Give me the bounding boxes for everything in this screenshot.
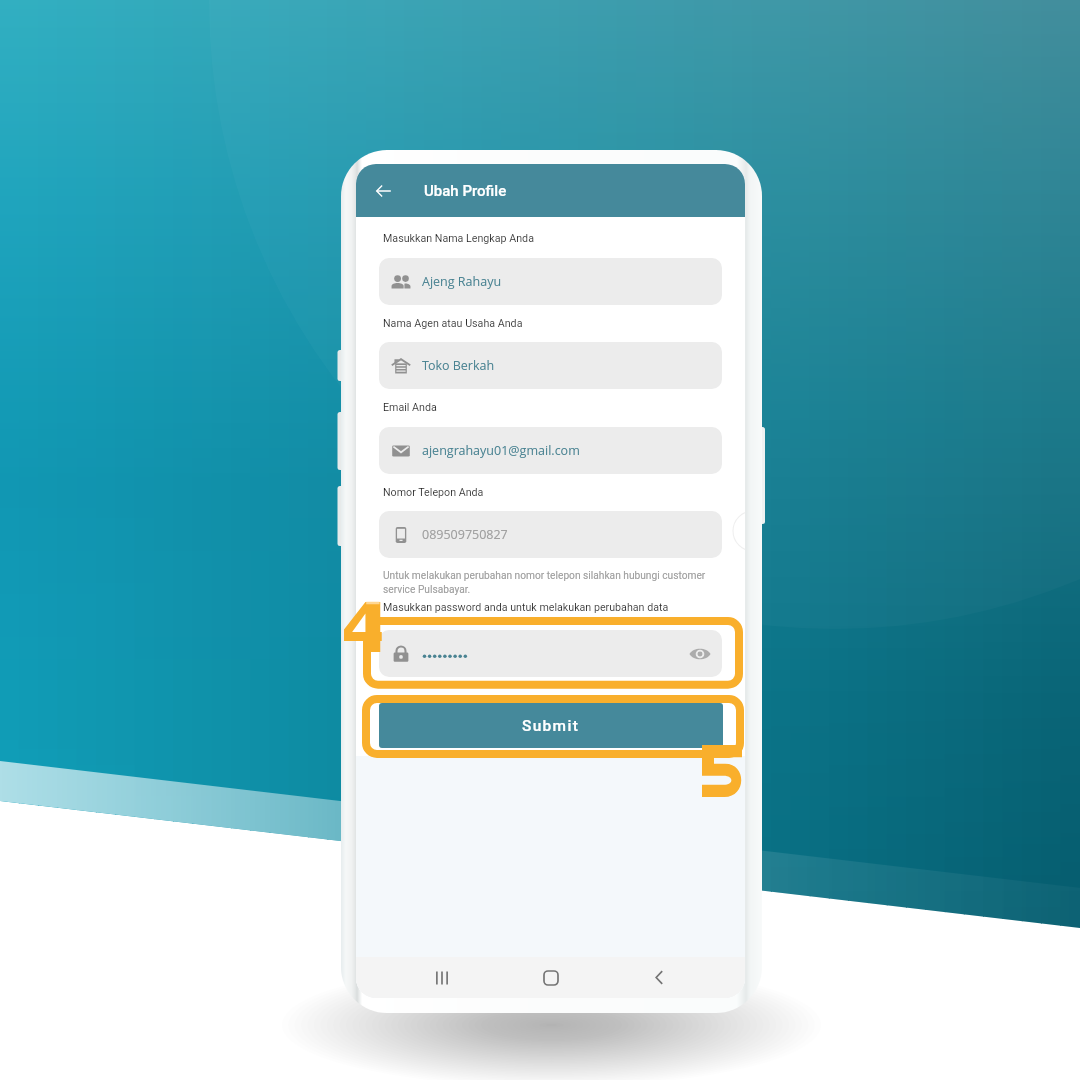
staticText: Nama Agen atau Usaha Anda <box>383 317 523 330</box>
button[interactable]: Ajeng Rahayu <box>379 258 722 305</box>
button[interactable]: ajengrahayu01@gmail.com <box>379 427 722 474</box>
staticText: Ubah Profile <box>424 182 507 200</box>
staticText: Masukkan Nama Lengkap Anda <box>383 232 534 245</box>
staticText: Nomor Telepon Anda <box>383 486 484 499</box>
button[interactable]: Back <box>356 164 411 217</box>
button[interactable]: Recent apps <box>420 957 464 998</box>
staticText: Submit <box>522 717 580 735</box>
button[interactable]: Back <box>637 957 681 998</box>
button[interactable]: Toko Berkah <box>379 342 722 389</box>
staticText: Masukkan password anda untuk melakukan p… <box>383 601 669 614</box>
staticText: Ajeng Rahayu <box>422 273 502 290</box>
staticText: Untuk melakukan perubahan nomor telepon … <box>383 570 714 595</box>
button[interactable]: Show password <box>379 630 722 677</box>
staticText: ajengrahayu01@gmail.com <box>422 442 580 459</box>
staticText: Toko Berkah <box>422 357 495 374</box>
staticText: 089509750827 <box>422 526 508 543</box>
button[interactable]: 089509750827 <box>379 511 722 558</box>
button[interactable]: Submit <box>379 703 723 748</box>
button[interactable]: Show password <box>680 634 720 674</box>
staticText: Email Anda <box>383 401 437 414</box>
button[interactable]: Home <box>529 957 573 998</box>
